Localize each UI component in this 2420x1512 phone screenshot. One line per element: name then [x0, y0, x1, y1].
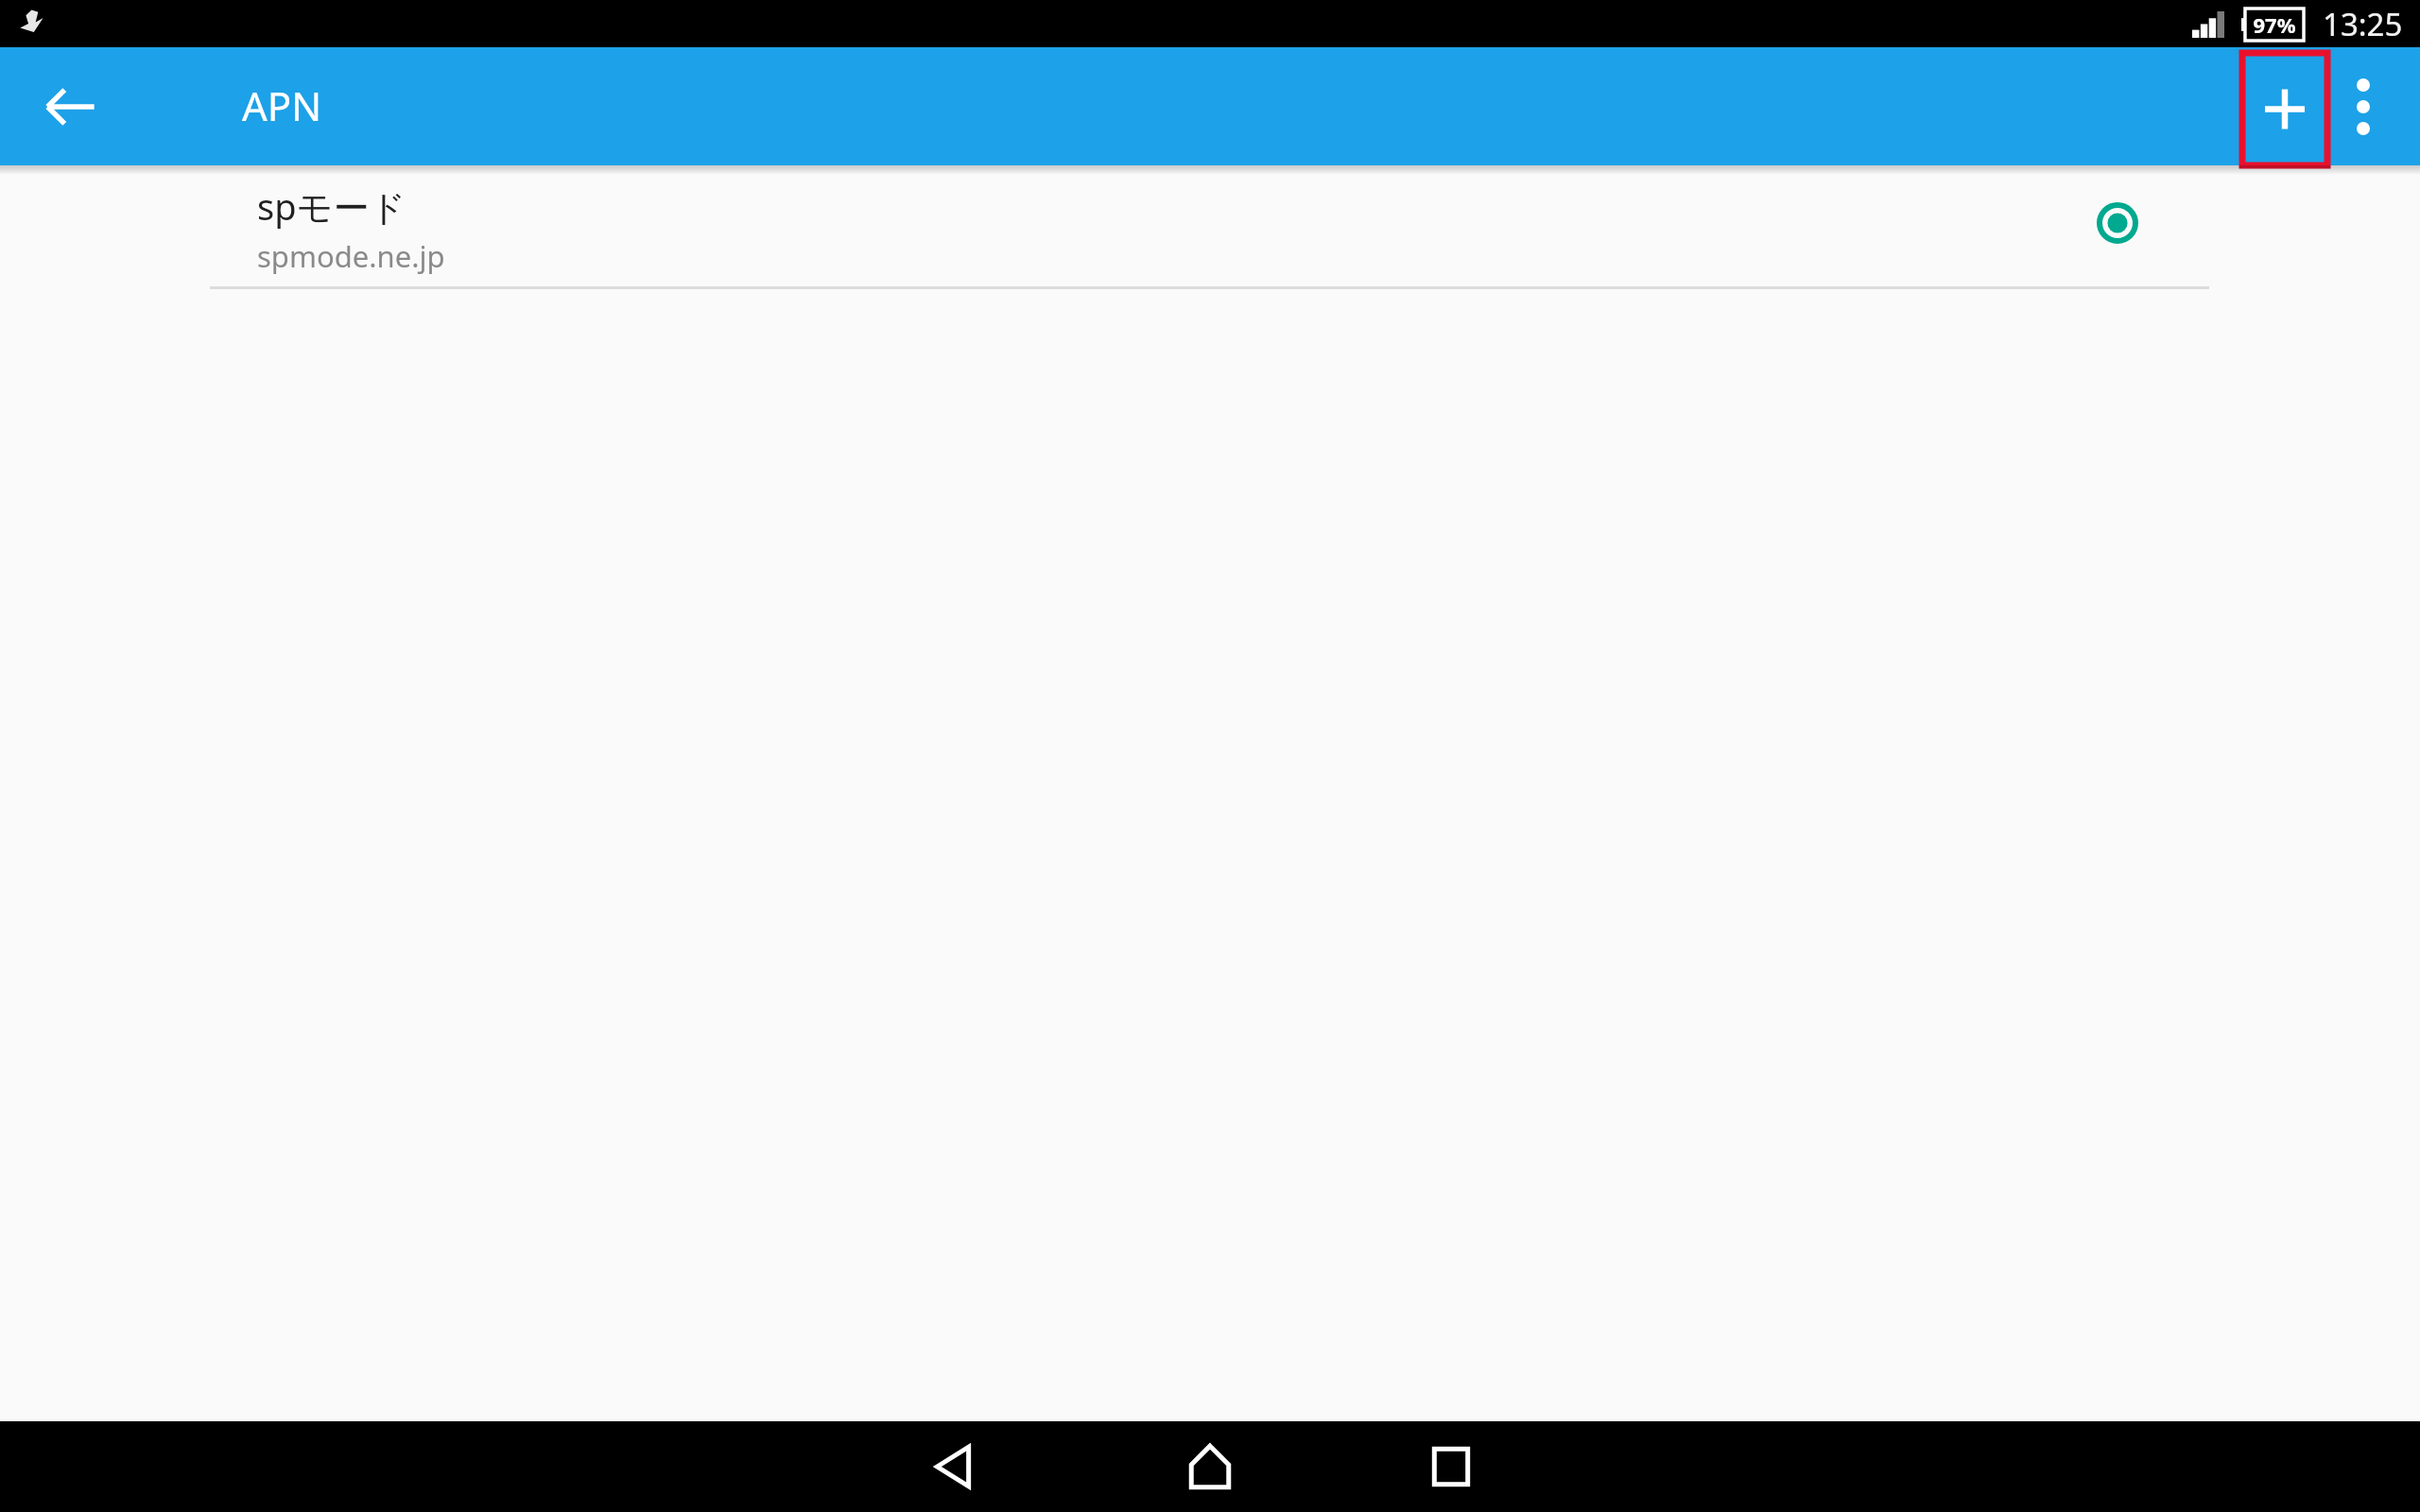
staticText: 97%	[2253, 10, 2296, 39]
button[interactable]: Back	[26, 62, 115, 151]
staticText: APN	[242, 78, 322, 132]
button[interactable]: Selected APN	[2076, 181, 2159, 265]
button[interactable]: Add APN	[2242, 53, 2327, 165]
button[interactable]: Back	[900, 1421, 1006, 1512]
button[interactable]: spモード	[0, 175, 2420, 286]
button[interactable]: More options	[2321, 64, 2406, 149]
button[interactable]: Recent apps	[1398, 1421, 1504, 1512]
staticText: spmode.ne.jp	[257, 236, 445, 276]
staticText: spモード	[257, 181, 406, 231]
button[interactable]: Home	[1157, 1421, 1263, 1512]
staticText: 13:25	[2323, 3, 2403, 45]
